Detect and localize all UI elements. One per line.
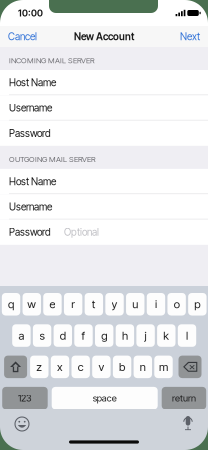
- button[interactable]: 123: [2, 387, 48, 409]
- staticText: Optional: [64, 226, 99, 238]
- staticText: Cancel: [8, 30, 37, 43]
- staticText: l: [186, 329, 188, 342]
- button[interactable]: e: [43, 293, 62, 315]
- button[interactable]: Delete: [178, 356, 201, 378]
- staticText: f: [81, 329, 85, 342]
- staticText: 123: [18, 392, 32, 404]
- button[interactable]: v: [92, 356, 111, 378]
- staticText: OUTGOING MAIL SERVER: [9, 154, 96, 164]
- staticText: j: [145, 329, 147, 342]
- button[interactable]: n: [134, 356, 152, 378]
- staticText: i: [155, 297, 157, 311]
- button[interactable]: return: [162, 387, 206, 409]
- button[interactable]: m: [154, 356, 173, 378]
- button[interactable]: p: [188, 293, 206, 315]
- staticText: u: [132, 297, 138, 311]
- staticText: n: [140, 360, 146, 374]
- button[interactable]: d: [54, 324, 72, 347]
- staticText: s: [40, 329, 45, 342]
- staticText: b: [119, 360, 125, 374]
- button[interactable]: w: [22, 293, 41, 315]
- staticText: New Account: [74, 30, 134, 43]
- button[interactable]: Emoji keyboard: [10, 412, 34, 436]
- button[interactable]: Username: [0, 95, 208, 121]
- staticText: z: [36, 360, 42, 374]
- staticText: INCOMING MAIL SERVER: [9, 56, 95, 65]
- button[interactable]: l: [178, 324, 196, 347]
- staticText: Next: [180, 30, 200, 43]
- button[interactable]: j: [136, 324, 155, 347]
- button[interactable]: Dictate: [176, 412, 200, 436]
- staticText: Username: [9, 102, 52, 114]
- button[interactable]: Username: [0, 194, 208, 219]
- button[interactable]: c: [71, 356, 90, 378]
- staticText: h: [122, 329, 128, 342]
- staticText: return: [172, 392, 196, 404]
- staticText: o: [174, 297, 180, 311]
- staticText: space: [93, 392, 117, 404]
- staticText: e: [49, 297, 55, 311]
- button[interactable]: Password: [0, 121, 208, 146]
- staticText: d: [60, 329, 66, 342]
- button[interactable]: o: [167, 293, 186, 315]
- button[interactable]: Host Name: [0, 70, 208, 95]
- staticText: Username: [9, 201, 52, 213]
- button[interactable]: i: [147, 293, 165, 315]
- button[interactable]: h: [116, 324, 134, 347]
- staticText: q: [8, 297, 14, 311]
- staticText: a: [18, 329, 24, 342]
- button[interactable]: z: [30, 356, 48, 378]
- staticText: x: [57, 360, 63, 374]
- staticText: Password: [9, 127, 51, 139]
- button[interactable]: t: [85, 293, 103, 315]
- button[interactable]: space: [52, 387, 158, 409]
- staticText: g: [101, 329, 107, 342]
- staticText: Host Name: [9, 175, 56, 188]
- button[interactable]: x: [51, 356, 69, 378]
- staticText: r: [71, 297, 75, 311]
- staticText: y: [111, 297, 117, 311]
- button[interactable]: f: [74, 324, 93, 347]
- staticText: m: [159, 360, 168, 374]
- button[interactable]: b: [113, 356, 131, 378]
- staticText: 10:00: [18, 7, 43, 19]
- button[interactable]: s: [33, 324, 51, 347]
- button[interactable]: Next: [162, 26, 208, 47]
- staticText: c: [78, 360, 84, 374]
- button[interactable]: a: [12, 324, 31, 347]
- button[interactable]: k: [157, 324, 175, 347]
- button[interactable]: Host Name: [0, 169, 208, 194]
- button[interactable]: Cancel: [0, 26, 52, 47]
- staticText: v: [98, 360, 104, 374]
- button[interactable]: r: [64, 293, 82, 315]
- button[interactable]: Shift: [4, 356, 27, 378]
- button[interactable]: y: [105, 293, 124, 315]
- staticText: p: [194, 297, 200, 311]
- button[interactable]: q: [2, 293, 20, 315]
- staticText: Password: [9, 226, 51, 238]
- button[interactable]: u: [126, 293, 144, 315]
- staticText: t: [92, 297, 96, 311]
- button[interactable]: Password: [0, 219, 208, 245]
- staticText: Host Name: [9, 77, 56, 89]
- button[interactable]: g: [95, 324, 113, 347]
- staticText: w: [27, 297, 36, 311]
- staticText: k: [163, 329, 169, 342]
